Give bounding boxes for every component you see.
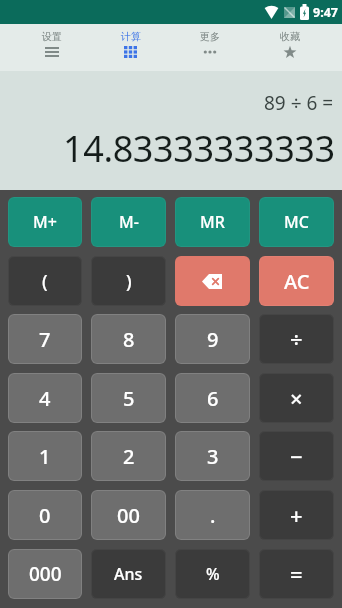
button[interactable]: 收藏 [250, 24, 330, 71]
button[interactable]: Ans [91, 549, 166, 599]
staticText: + [290, 500, 303, 530]
button[interactable]: 7 [8, 314, 82, 364]
button[interactable]: + [259, 490, 334, 540]
button[interactable]: 9 [175, 314, 250, 364]
button[interactable]: 3 [175, 431, 250, 481]
button[interactable]: 更多 [170, 24, 250, 71]
staticText: 9:47 [313, 4, 338, 21]
button[interactable]: ( [8, 256, 82, 306]
button[interactable]: MR [175, 197, 250, 247]
button[interactable]: 8 [91, 314, 166, 364]
button[interactable] [175, 256, 250, 306]
staticText: 5 [123, 385, 135, 412]
button[interactable]: 6 [175, 373, 250, 423]
staticText: . [210, 502, 216, 529]
staticText: 000 [29, 561, 62, 587]
staticText: 4 [39, 385, 51, 412]
staticText: − [290, 441, 303, 471]
staticText: 更多 [200, 30, 220, 43]
staticText: 14.83333333333 [63, 124, 335, 173]
staticText: MR [200, 211, 225, 233]
button[interactable]: × [259, 373, 334, 423]
button[interactable]: ) [91, 256, 166, 306]
staticText: 1 [39, 443, 51, 470]
staticText: Ans [114, 563, 143, 585]
staticText: M- [119, 211, 139, 233]
staticText: 6 [207, 385, 219, 412]
staticText: 计算 [121, 30, 141, 43]
button[interactable]: . [175, 490, 250, 540]
staticText: 收藏 [280, 30, 300, 43]
button[interactable]: 1 [8, 431, 82, 481]
staticText: AC [284, 268, 310, 295]
staticText: 3 [207, 443, 219, 470]
button[interactable]: ÷ [259, 314, 334, 364]
staticText: 8 [123, 326, 135, 353]
button[interactable]: 2 [91, 431, 166, 481]
staticText: 7 [39, 326, 51, 353]
staticText: × [290, 383, 303, 413]
staticText: 2 [123, 443, 135, 470]
staticText: ( [42, 269, 48, 294]
button[interactable]: 0 [8, 490, 82, 540]
staticText: 89 ÷ 6 = [264, 90, 334, 116]
button[interactable]: M+ [8, 197, 82, 247]
staticText: = [290, 559, 303, 589]
button[interactable]: 设置 [12, 24, 91, 71]
staticText: 00 [117, 502, 140, 529]
button[interactable]: 计算 [91, 24, 170, 71]
button[interactable]: = [259, 549, 334, 599]
staticText: 9 [207, 326, 219, 353]
button[interactable]: MC [259, 197, 334, 247]
button[interactable]: − [259, 431, 334, 481]
button[interactable]: 4 [8, 373, 82, 423]
button[interactable]: % [175, 549, 250, 599]
button[interactable]: 000 [8, 549, 82, 599]
staticText: % [206, 563, 220, 585]
staticText: 0 [39, 502, 51, 529]
staticText: ÷ [290, 324, 303, 354]
button[interactable]: 00 [91, 490, 166, 540]
button[interactable]: AC [259, 256, 334, 306]
staticText: ) [126, 269, 132, 294]
staticText: MC [284, 211, 309, 233]
button[interactable]: M- [91, 197, 166, 247]
button[interactable]: 5 [91, 373, 166, 423]
staticText: 设置 [42, 30, 62, 43]
staticText: M+ [33, 211, 57, 233]
